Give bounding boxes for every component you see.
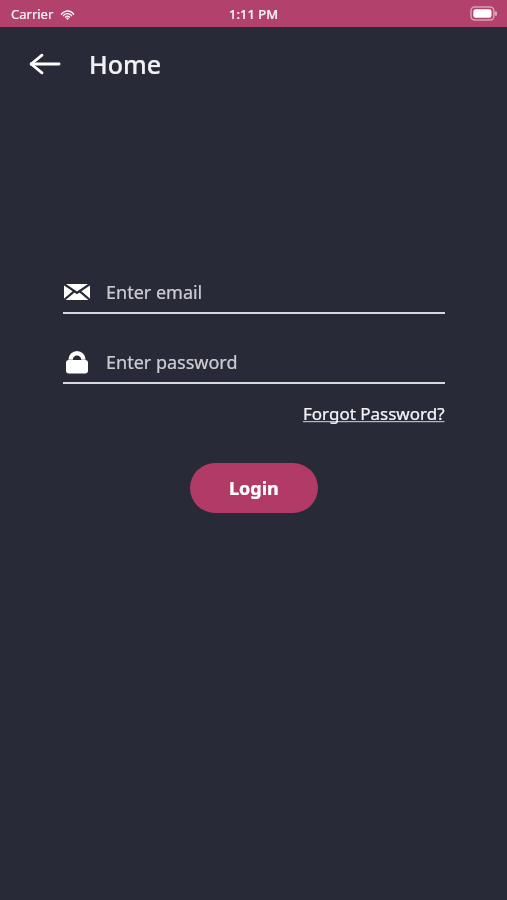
- staticText: Enter password: [106, 350, 238, 375]
- staticText: 1:11 PM: [229, 5, 279, 23]
- button[interactable]: Back: [22, 41, 68, 87]
- button[interactable]: Enter password: [63, 348, 445, 384]
- button[interactable]: Enter email: [63, 278, 445, 314]
- staticText: Forgot Password?: [303, 402, 445, 425]
- button[interactable]: Login: [190, 463, 318, 513]
- staticText: Login: [229, 476, 279, 501]
- staticText: Home: [89, 47, 162, 81]
- button[interactable]: Forgot Password?: [303, 398, 445, 429]
- staticText: Enter email: [106, 280, 203, 305]
- staticText: Carrier: [11, 5, 54, 23]
